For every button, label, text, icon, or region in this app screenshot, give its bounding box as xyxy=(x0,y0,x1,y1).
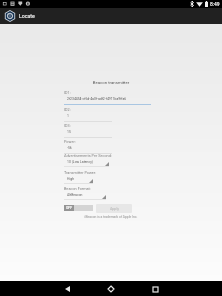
button[interactable]: 10 (Low Latency) xyxy=(64,158,109,167)
staticText: 10 (Low Latency) xyxy=(67,160,93,164)
staticText: Beacon Format: xyxy=(64,186,91,190)
staticText: High xyxy=(67,177,75,181)
button[interactable]: Back xyxy=(49,282,85,296)
button[interactable]: AltBeacon xyxy=(64,191,106,200)
staticText: iBeacon is a trademark of Apple Inc. xyxy=(0,215,222,219)
button[interactable]: Apply xyxy=(96,204,132,213)
staticText: ID1: xyxy=(64,90,71,94)
staticText: Apply xyxy=(110,207,119,211)
staticText: -56 xyxy=(67,146,72,150)
staticText: AltBeacon xyxy=(67,193,83,197)
staticText: OFF xyxy=(66,206,73,210)
staticText: Power: xyxy=(64,139,76,143)
staticText: Beacon transmitter xyxy=(0,80,222,85)
button[interactable]: High xyxy=(64,175,93,184)
staticText: 15 xyxy=(67,130,71,134)
staticText: 2f234454-cf6d-4a0f-adf2-f4911ba9ffa6 xyxy=(67,97,127,101)
staticText: 8:49 xyxy=(210,1,220,7)
staticText: 1 xyxy=(67,114,69,118)
button[interactable]: Recent apps xyxy=(137,282,173,296)
staticText: ID2: xyxy=(64,107,71,111)
button[interactable]: Home xyxy=(93,282,129,296)
button[interactable]: Locate xyxy=(4,10,16,22)
staticText: Locate xyxy=(19,13,35,19)
staticText: Transmitter Power: xyxy=(64,170,97,174)
button[interactable]: OFF xyxy=(64,205,93,211)
staticText: ID3: xyxy=(64,123,71,127)
staticText: Advertisements Per Second: xyxy=(64,153,112,157)
